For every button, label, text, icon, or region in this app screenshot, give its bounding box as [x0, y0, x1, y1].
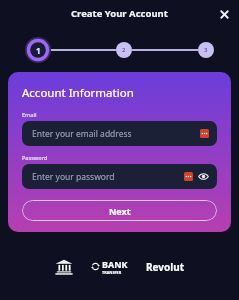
- staticText: Revolut: [146, 260, 185, 274]
- staticText: TRANSFER: [102, 270, 122, 275]
- button[interactable]: Close: [214, 4, 234, 24]
- staticText: BANK: [102, 258, 128, 270]
- staticText: Password: [22, 154, 48, 161]
- staticText: 1: [36, 45, 41, 56]
- button[interactable]: Bank: [55, 259, 73, 275]
- staticText: Enter your password: [32, 171, 184, 183]
- other: Bank transfer: [91, 262, 100, 271]
- staticText: Enter your email address: [32, 128, 200, 140]
- staticText: 2: [122, 46, 126, 54]
- button[interactable]: Bank transfer: [91, 258, 128, 275]
- button[interactable]: 2: [116, 42, 132, 58]
- staticText: 3: [204, 46, 208, 54]
- button[interactable]: 1: [25, 37, 51, 63]
- staticText: Next: [109, 205, 131, 217]
- button[interactable]: Next: [22, 200, 217, 221]
- button[interactable]: Autofill: [200, 129, 209, 138]
- button[interactable]: Enter your email address: [22, 121, 217, 146]
- staticText: Email: [22, 111, 37, 118]
- button[interactable]: Show password: [198, 171, 209, 182]
- staticText: Account Information: [22, 85, 134, 101]
- staticText: Create Your Account: [71, 7, 168, 20]
- button[interactable]: Autofill: [184, 172, 193, 181]
- button[interactable]: 3: [198, 42, 214, 58]
- button[interactable]: Enter your password: [22, 164, 217, 189]
- button[interactable]: Revolut: [146, 260, 185, 274]
